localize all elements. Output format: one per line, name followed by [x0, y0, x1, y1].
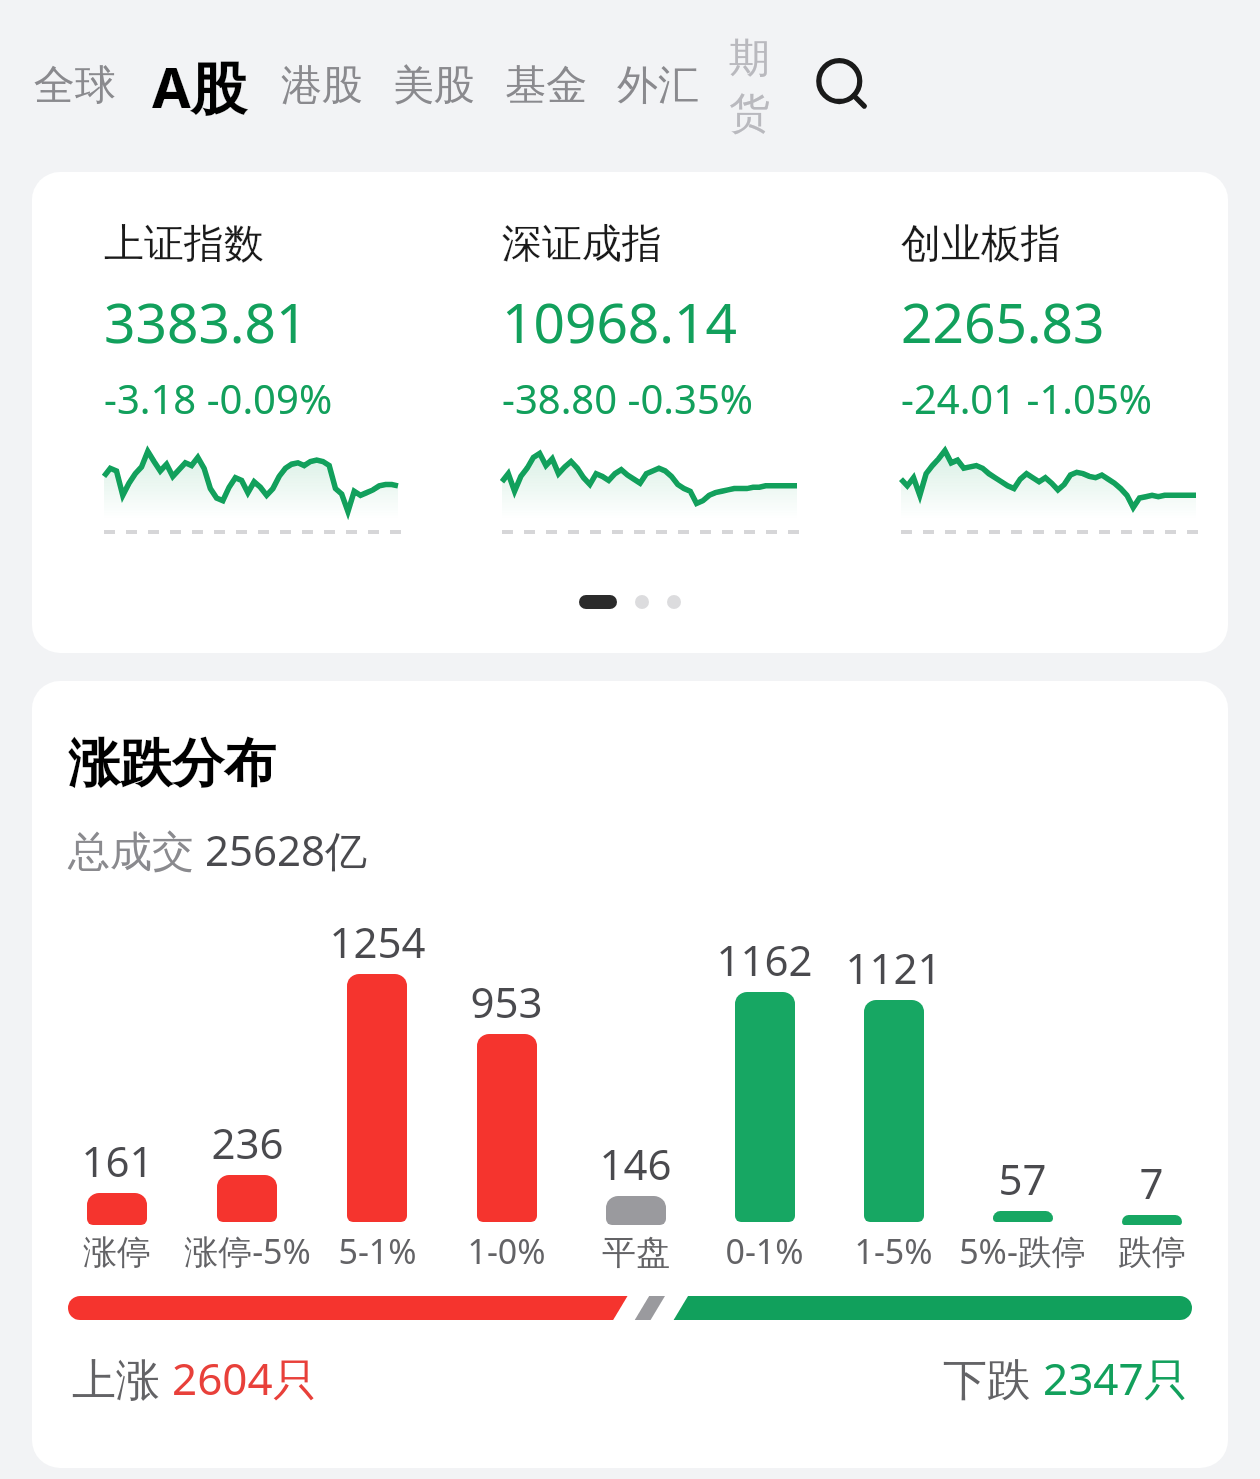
staticText: 5-1% [338, 1228, 417, 1274]
staticText: 基金 [505, 60, 587, 112]
staticText: 全球 [34, 60, 116, 112]
staticText: 25628亿 [205, 821, 368, 878]
staticText: 美股 [393, 60, 475, 112]
button[interactable]: Search [805, 48, 881, 124]
staticText: 953 [470, 973, 543, 1030]
button[interactable]: 上证指数 [32, 218, 430, 537]
staticText: 1254 [329, 913, 426, 970]
button[interactable]: 基金 [505, 60, 587, 112]
staticText: 1-0% [467, 1228, 546, 1274]
staticText: 236 [211, 1114, 284, 1171]
button[interactable]: 外汇 [617, 60, 699, 112]
button[interactable]: 港股 [281, 60, 363, 112]
staticText: 跌停 [1118, 1231, 1186, 1274]
staticText: 10968.14 [502, 284, 737, 359]
staticText: 涨跌分布 [68, 731, 276, 797]
staticText: 1162 [716, 931, 813, 988]
staticText: 7 [1139, 1154, 1164, 1211]
staticText: 创业板指 [901, 218, 1061, 268]
staticText: 上涨 [72, 1348, 172, 1408]
staticText: 平盘 [602, 1231, 670, 1274]
staticText: -38.80 -0.35% [502, 371, 753, 425]
staticText: 下跌 [943, 1348, 1043, 1408]
staticText: -24.01 -1.05% [901, 371, 1152, 425]
staticText: 3383.81 [104, 284, 308, 359]
staticText: 港股 [281, 60, 363, 112]
button[interactable]: 美股 [393, 60, 475, 112]
button[interactable]: 全球 [34, 60, 116, 112]
staticText: 涨停-5% [184, 1228, 311, 1274]
staticText: 涨停 [83, 1231, 151, 1274]
staticText: -3.18 -0.09% [104, 371, 333, 425]
staticText: 总成交 [68, 821, 205, 878]
button[interactable]: A股 [152, 48, 247, 124]
staticText: 外汇 [617, 60, 699, 112]
staticText: 1-5% [854, 1228, 933, 1274]
staticText: 0-1% [725, 1228, 804, 1274]
staticText: 5%-跌停 [959, 1228, 1086, 1274]
staticText: 深证成指 [502, 218, 662, 268]
staticText: 161 [81, 1132, 154, 1189]
staticText: 146 [599, 1135, 672, 1192]
staticText: 2265.83 [901, 284, 1105, 359]
staticText: 2604只 [172, 1348, 317, 1408]
button[interactable]: 创业板指 [829, 218, 1228, 537]
button[interactable]: 深证成指 [430, 218, 829, 537]
staticText: 1121 [845, 939, 942, 996]
staticText: 上证指数 [104, 218, 264, 268]
staticText: 2347只 [1043, 1348, 1188, 1408]
button[interactable]: 上证指数 [32, 172, 1228, 653]
staticText: A股 [152, 48, 247, 124]
staticText: 57 [998, 1150, 1047, 1207]
staticText: 期货 [729, 33, 801, 139]
button[interactable]: 期货 [729, 33, 801, 139]
